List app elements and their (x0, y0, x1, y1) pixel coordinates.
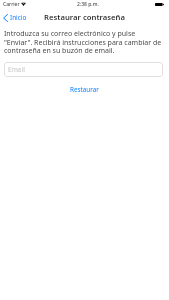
staticText: Introduzca su correo electrónico y pulse… (4, 29, 164, 55)
staticText: Restaurar (70, 85, 99, 94)
staticText: Restaurar contraseña (44, 12, 125, 22)
button[interactable]: Back to Inicio (0, 12, 30, 23)
staticText: Email (8, 65, 25, 74)
staticText: Carrier (3, 1, 20, 8)
staticText: 2:38 p.m. (77, 1, 99, 8)
staticText: Inicio (10, 13, 27, 22)
button[interactable]: Email (4, 62, 163, 77)
button[interactable]: Restaurar (0, 83, 169, 96)
other: Wi-Fi signal (21, 2, 26, 6)
other: Battery (155, 3, 164, 6)
